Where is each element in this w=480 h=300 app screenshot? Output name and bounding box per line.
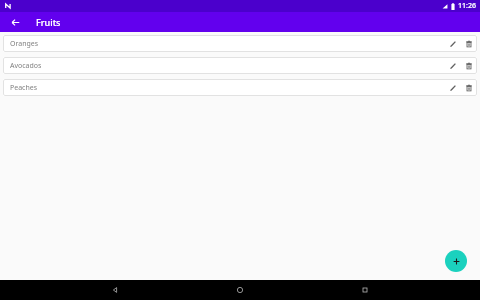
button[interactable]: Back [6, 13, 24, 31]
staticText: Peaches [10, 83, 38, 93]
button[interactable]: Edit [445, 79, 461, 96]
button[interactable]: Delete [461, 79, 477, 96]
button[interactable]: Add [445, 250, 467, 272]
button[interactable]: Back [105, 280, 125, 300]
staticText: Avocados [10, 61, 42, 71]
button[interactable]: Recent apps [355, 280, 375, 300]
button[interactable]: Edit [445, 35, 461, 52]
button[interactable]: Home [230, 280, 250, 300]
button[interactable]: Delete [461, 57, 477, 74]
button[interactable]: Edit [445, 57, 461, 74]
staticText: 11:26 [458, 1, 476, 11]
button[interactable]: Peaches [3, 79, 477, 96]
button[interactable]: Delete [461, 35, 477, 52]
button[interactable]: Avocados [3, 57, 477, 74]
staticText: Oranges [10, 39, 39, 49]
staticText: Fruits [36, 16, 61, 28]
button[interactable]: Oranges [3, 35, 477, 52]
